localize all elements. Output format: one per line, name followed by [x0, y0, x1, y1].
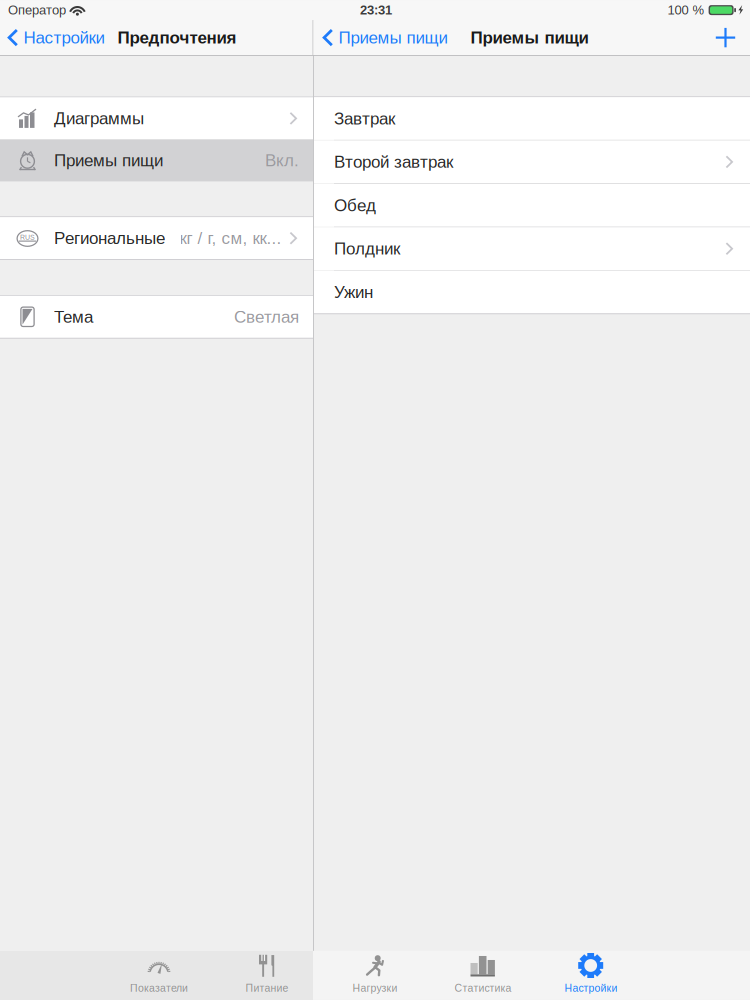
staticText: Предпочтения — [117, 28, 236, 47]
staticText: кг / г, см, кк... — [179, 229, 281, 248]
staticText: Полдник — [334, 239, 400, 258]
staticText: Региональные — [54, 229, 165, 248]
staticText: Завтрак — [334, 109, 395, 128]
staticText: Статистика — [454, 982, 511, 994]
button[interactable]: Диаграммы — [0, 97, 313, 139]
staticText: Второй завтрак — [334, 152, 453, 171]
button[interactable]: Добавить — [705, 20, 745, 55]
staticText: Приемы пищи — [470, 28, 588, 47]
staticText: Обед — [334, 196, 376, 215]
button[interactable]: Нагрузки — [321, 951, 429, 1000]
button[interactable]: Приемы пищи — [0, 139, 313, 181]
staticText: Тема — [54, 307, 93, 326]
button[interactable]: Приемы пищи — [313, 20, 449, 55]
staticText: Питание — [245, 982, 288, 994]
button[interactable]: Ужин — [314, 271, 750, 313]
staticText: Приемы пищи — [338, 28, 447, 47]
button[interactable]: Завтрак — [314, 97, 750, 140]
staticText: 100 % — [668, 3, 705, 17]
staticText: RUS — [20, 233, 35, 241]
staticText: Приемы пищи — [54, 151, 163, 170]
button[interactable]: Настройки — [0, 20, 106, 55]
staticText: Нагрузки — [352, 982, 397, 994]
button[interactable]: Тема — [0, 296, 313, 338]
staticText: Ужин — [334, 283, 373, 302]
button[interactable]: Статистика — [429, 951, 537, 1000]
button[interactable]: Обед — [314, 184, 750, 227]
button[interactable]: Второй завтрак — [314, 141, 750, 183]
staticText: Вкл. — [265, 151, 299, 170]
staticText: Настройки — [23, 28, 104, 47]
button[interactable]: Показатели — [105, 951, 213, 1000]
staticText: 23:31 — [360, 3, 392, 17]
button[interactable]: Настройки — [537, 951, 645, 1000]
button[interactable]: Питание — [213, 951, 321, 1000]
staticText: Показатели — [130, 982, 188, 994]
staticText: Светлая — [234, 307, 299, 326]
staticText: Оператор — [8, 3, 66, 17]
button[interactable]: Полдник — [314, 227, 750, 270]
staticText: Диаграммы — [54, 109, 144, 128]
staticText: Настройки — [564, 982, 617, 994]
button[interactable]: RUS — [0, 217, 313, 259]
